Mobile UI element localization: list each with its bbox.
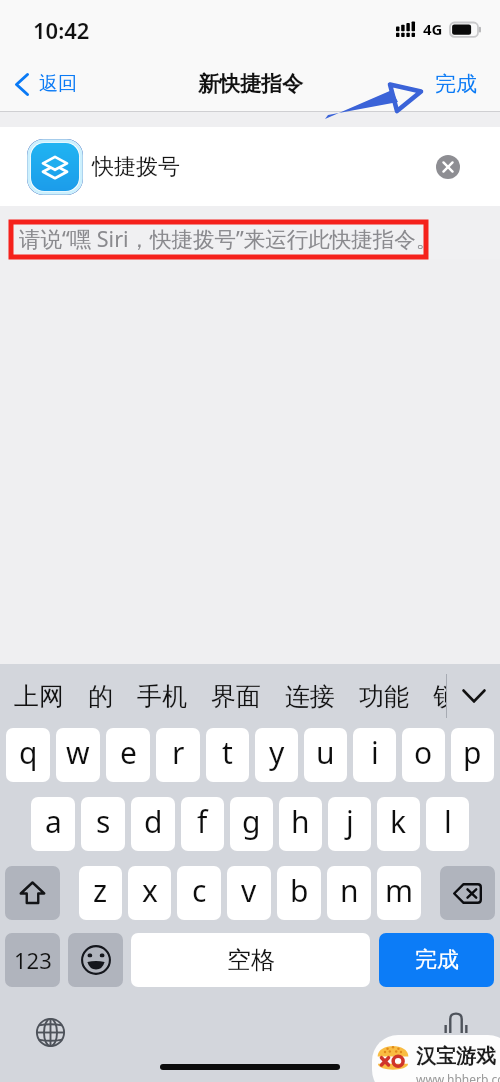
staticText: r <box>172 732 185 773</box>
staticText: 汉宝游戏 <box>416 1044 496 1069</box>
button[interactable]: y <box>255 728 298 782</box>
button[interactable]: 完成 <box>419 63 500 105</box>
button[interactable]: o <box>402 728 445 782</box>
staticText: 123 <box>14 945 52 975</box>
button[interactable]: 上网 <box>2 673 76 720</box>
button[interactable]: b <box>277 866 321 920</box>
button[interactable]: 界面 <box>199 673 273 720</box>
button[interactable]: 连接 <box>273 673 347 720</box>
staticText: n <box>340 870 359 911</box>
button[interactable]: e <box>106 728 150 782</box>
staticText: 上网 <box>14 681 64 712</box>
staticText: t <box>222 732 233 773</box>
button[interactable]: q <box>6 728 50 782</box>
staticText: 新快捷指令 <box>198 71 303 97</box>
button[interactable]: 123 <box>5 933 60 987</box>
button[interactable]: t <box>206 728 249 782</box>
button[interactable]: l <box>426 797 469 851</box>
button[interactable]: r <box>156 728 200 782</box>
staticText: y <box>269 732 285 773</box>
staticText: c <box>192 870 207 911</box>
staticText: 完成 <box>415 946 459 974</box>
staticText: www.hbherb.com <box>416 1071 500 1082</box>
staticText: 快捷拨号 <box>92 153 180 181</box>
staticText: p <box>463 732 482 773</box>
button[interactable]: p <box>451 728 494 782</box>
staticText: 完成 <box>435 71 477 97</box>
staticText: o <box>414 732 433 773</box>
staticText: i <box>371 732 379 773</box>
staticText: u <box>316 732 335 773</box>
button[interactable]: Shift <box>5 866 60 920</box>
button[interactable]: v <box>227 866 271 920</box>
button[interactable]: d <box>131 797 175 851</box>
button[interactable]: 完成 <box>379 933 494 987</box>
staticText: k <box>390 801 407 842</box>
staticText: q <box>19 732 38 773</box>
button[interactable]: h <box>279 797 322 851</box>
button[interactable]: 手机 <box>125 673 199 720</box>
button[interactable]: 锁 <box>421 673 446 720</box>
staticText: 界面 <box>211 681 261 712</box>
staticText: l <box>444 801 452 842</box>
button[interactable]: 空格 <box>131 933 370 987</box>
staticText: a <box>45 801 62 842</box>
staticText: b <box>290 870 309 911</box>
button[interactable]: u <box>304 728 347 782</box>
button[interactable]: i <box>353 728 396 782</box>
staticText: s <box>96 801 111 842</box>
staticText: 4G <box>423 19 443 39</box>
staticText: 锁 <box>433 681 436 712</box>
staticText: 连接 <box>285 681 335 712</box>
button[interactable]: g <box>230 797 273 851</box>
staticText: z <box>93 870 108 911</box>
staticText: 手机 <box>137 681 187 712</box>
button[interactable]: Emoji <box>68 933 123 987</box>
button[interactable]: 返回 <box>0 66 91 102</box>
staticText: e <box>120 732 137 773</box>
staticText: 返回 <box>39 72 77 96</box>
staticText: g <box>242 801 261 842</box>
staticText: d <box>144 801 163 842</box>
button[interactable]: a <box>31 797 75 851</box>
button[interactable]: j <box>328 797 371 851</box>
staticText: 空格 <box>227 945 275 975</box>
button[interactable]: Hide candidates <box>447 664 500 728</box>
button[interactable]: Backspace <box>440 866 495 920</box>
staticText: v <box>241 870 257 911</box>
staticText: 10:42 <box>33 15 90 45</box>
staticText: f <box>197 801 208 842</box>
button[interactable]: n <box>327 866 371 920</box>
button[interactable]: Dictation <box>445 1013 467 1033</box>
staticText: w <box>66 732 90 773</box>
staticText: m <box>385 870 414 911</box>
staticText: x <box>142 870 158 911</box>
button[interactable]: Change keyboard <box>35 1017 66 1048</box>
button[interactable]: k <box>377 797 420 851</box>
button[interactable]: z <box>79 866 122 920</box>
staticText: 的 <box>88 681 113 712</box>
button[interactable]: c <box>177 866 221 920</box>
button[interactable]: 功能 <box>347 673 421 720</box>
button[interactable]: w <box>56 728 100 782</box>
staticText: 请说“嘿 Siri，快捷拨号”来运行此快捷指令。 <box>19 224 438 253</box>
button[interactable]: s <box>81 797 125 851</box>
button[interactable]: 的 <box>76 673 125 720</box>
button[interactable]: x <box>128 866 171 920</box>
button[interactable]: f <box>181 797 224 851</box>
staticText: h <box>291 801 310 842</box>
button[interactable]: m <box>377 866 421 920</box>
staticText: 功能 <box>359 681 409 712</box>
button[interactable]: Clear <box>429 148 467 186</box>
staticText: j <box>346 801 354 842</box>
